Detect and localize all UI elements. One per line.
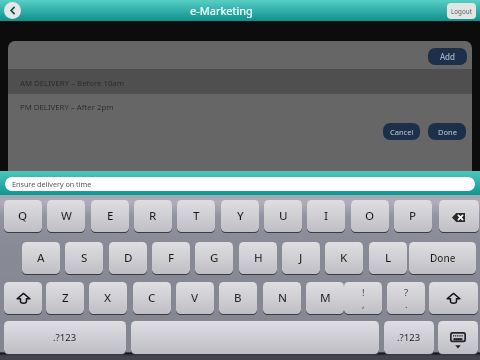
button[interactable]: X xyxy=(89,282,127,314)
button[interactable]: Back xyxy=(4,2,21,19)
staticText: PM DELIVERY – After 2pm xyxy=(20,102,114,113)
staticText: G xyxy=(210,250,219,266)
staticText: Done xyxy=(430,251,456,265)
button[interactable]: P xyxy=(394,200,432,232)
staticText: Cancel xyxy=(390,127,414,137)
staticText: N xyxy=(278,290,287,306)
staticText: Ensure delivery on time xyxy=(12,179,92,189)
staticText: Logout xyxy=(451,7,472,16)
staticText: . xyxy=(405,298,408,311)
button[interactable]: D xyxy=(109,242,147,274)
button[interactable]: Done xyxy=(409,242,476,274)
staticText: Q xyxy=(18,208,28,224)
button[interactable] xyxy=(438,321,478,354)
staticText: X xyxy=(104,290,112,306)
staticText: Done xyxy=(438,127,457,137)
staticText: R xyxy=(149,208,157,224)
staticText: ! xyxy=(362,286,365,299)
button[interactable]: M xyxy=(306,282,344,314)
staticText: A xyxy=(37,250,45,266)
staticText: Add xyxy=(440,51,455,62)
staticText: U xyxy=(279,208,288,224)
staticText: L xyxy=(385,250,392,266)
staticText: Z xyxy=(62,290,69,306)
staticText: E xyxy=(107,208,114,224)
staticText: D xyxy=(124,250,133,266)
button[interactable]: H xyxy=(239,242,277,274)
button[interactable]: A xyxy=(22,242,60,274)
button[interactable]: Z xyxy=(46,282,84,314)
button[interactable]: Cancel xyxy=(383,123,420,140)
staticText: e-Marketing xyxy=(190,3,253,18)
button[interactable]: R xyxy=(134,200,172,232)
button[interactable]: Q xyxy=(4,200,42,232)
staticText: H xyxy=(254,250,263,266)
button[interactable] xyxy=(439,200,479,232)
button[interactable]: Done xyxy=(428,123,466,140)
staticText: M xyxy=(320,290,331,306)
staticText: V xyxy=(191,290,199,306)
staticText: ? xyxy=(404,286,409,299)
button[interactable]: Y xyxy=(221,200,259,232)
button[interactable]: S xyxy=(65,242,103,274)
button[interactable]: Logout xyxy=(447,3,476,19)
staticText: I xyxy=(324,208,329,224)
button[interactable]: L xyxy=(369,242,407,274)
button[interactable] xyxy=(131,321,379,354)
button[interactable]: G xyxy=(195,242,233,274)
button[interactable]: K xyxy=(325,242,363,274)
button[interactable]: .?123 xyxy=(384,321,434,354)
button[interactable] xyxy=(429,282,478,314)
button[interactable]: E xyxy=(91,200,129,232)
button[interactable]: J xyxy=(282,242,320,274)
button[interactable]: Ensure delivery on time xyxy=(5,177,475,191)
staticText: AM DELIVERY – Before 10am xyxy=(20,78,125,89)
staticText: .?123 xyxy=(53,331,77,344)
button[interactable]: ? xyxy=(387,282,425,314)
staticText: Y xyxy=(237,208,244,224)
staticText: J xyxy=(299,250,303,266)
staticText: C xyxy=(148,290,156,306)
button[interactable]: ! xyxy=(344,282,382,314)
staticText: , xyxy=(362,298,365,311)
button[interactable]: T xyxy=(177,200,215,232)
button[interactable]: PM DELIVERY – After 2pm xyxy=(8,93,472,118)
staticText: F xyxy=(168,250,175,266)
button[interactable]: C xyxy=(133,282,171,314)
button[interactable]: AM DELIVERY – Before 10am xyxy=(8,69,472,94)
button[interactable]: U xyxy=(264,200,302,232)
staticText: W xyxy=(61,208,72,224)
button[interactable]: I xyxy=(307,200,345,232)
staticText: S xyxy=(81,250,88,266)
button[interactable] xyxy=(4,282,42,314)
button[interactable]: B xyxy=(219,282,257,314)
staticText: B xyxy=(234,290,242,306)
staticText: O xyxy=(365,208,375,224)
staticText: P xyxy=(409,208,417,224)
staticText: T xyxy=(193,208,200,224)
staticText: K xyxy=(340,250,348,266)
staticText: .?123 xyxy=(397,331,421,344)
button[interactable]: .?123 xyxy=(4,321,126,354)
button[interactable]: N xyxy=(263,282,301,314)
button[interactable]: F xyxy=(152,242,190,274)
button[interactable]: V xyxy=(176,282,214,314)
button[interactable]: W xyxy=(47,200,85,232)
button[interactable]: Add xyxy=(428,48,467,65)
button[interactable]: O xyxy=(351,200,389,232)
